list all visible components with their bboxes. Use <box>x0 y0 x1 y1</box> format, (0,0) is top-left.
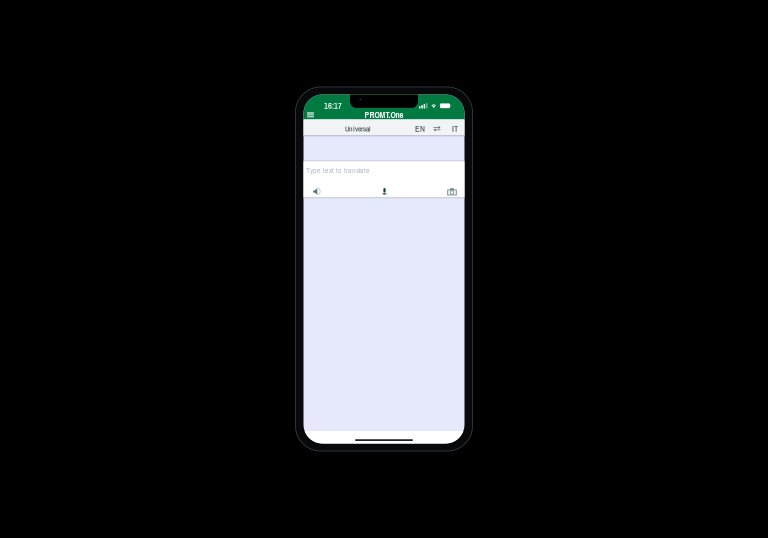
button[interactable]: Voice input <box>377 186 392 197</box>
staticText: 16:17 <box>324 100 342 111</box>
button[interactable]: IT <box>445 119 464 133</box>
staticText: Type text to translate <box>306 165 370 175</box>
button[interactable]: Universal <box>303 119 411 133</box>
button[interactable]: Menu <box>303 110 317 119</box>
staticText: PROMT.One <box>364 109 403 120</box>
staticText: EN <box>415 123 425 134</box>
button[interactable]: Camera input <box>444 186 459 197</box>
button[interactable]: Swap languages <box>428 119 445 133</box>
button[interactable]: Speak <box>309 186 324 197</box>
staticText: IT <box>452 123 458 134</box>
staticText: Universal <box>345 124 370 134</box>
button[interactable]: EN <box>411 119 428 133</box>
